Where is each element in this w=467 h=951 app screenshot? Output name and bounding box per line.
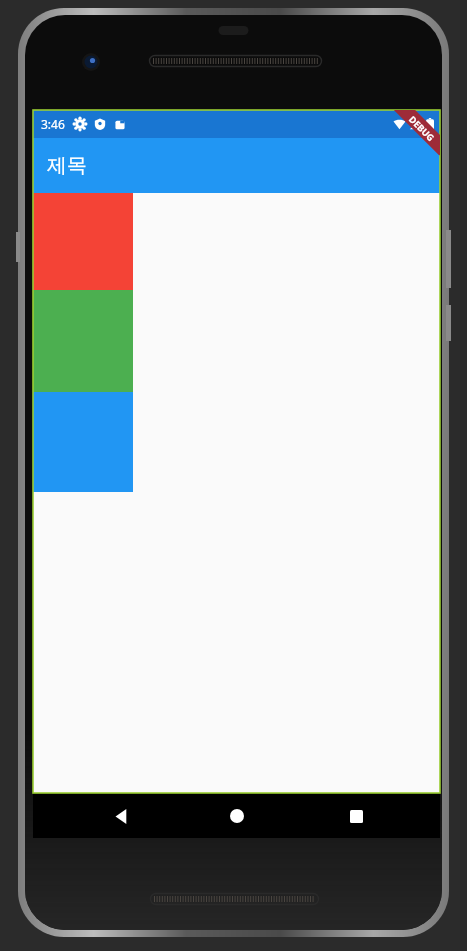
button[interactable] [33, 290, 133, 392]
staticText: 제목 [47, 153, 87, 178]
button[interactable]: Back [103, 798, 139, 834]
staticText: 3:46 [41, 116, 65, 132]
button[interactable]: Home [219, 798, 255, 834]
button[interactable]: Recent apps [338, 798, 374, 834]
staticText: DEBUG [407, 113, 437, 143]
button[interactable] [33, 392, 133, 492]
button[interactable] [33, 193, 133, 290]
